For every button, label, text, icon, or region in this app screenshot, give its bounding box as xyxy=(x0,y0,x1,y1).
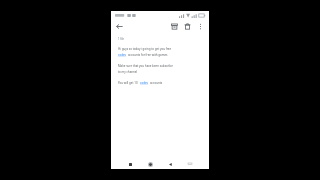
button[interactable]: Home xyxy=(143,159,157,169)
button[interactable]: Archive xyxy=(169,21,180,32)
staticText: 1 file xyxy=(118,37,124,41)
staticText: accounts xyxy=(150,81,163,85)
staticText: You will get 10 xyxy=(118,81,138,85)
staticText: accounts for free with games xyxy=(128,53,168,57)
button[interactable]: codes xyxy=(140,81,148,85)
button[interactable]: Delete xyxy=(182,21,193,32)
staticText: Make sure that you have been subscribe xyxy=(118,64,173,68)
button[interactable]: Recent apps xyxy=(123,159,137,169)
button[interactable]: More options xyxy=(195,21,206,32)
button[interactable]: Back xyxy=(163,159,177,169)
button[interactable]: Hide keyboard xyxy=(183,159,197,169)
button[interactable]: Back xyxy=(114,21,125,32)
button[interactable]: codes xyxy=(118,53,126,57)
staticText: Hi guys so today i going to get you free xyxy=(118,47,172,51)
staticText: to my channel xyxy=(118,70,138,74)
